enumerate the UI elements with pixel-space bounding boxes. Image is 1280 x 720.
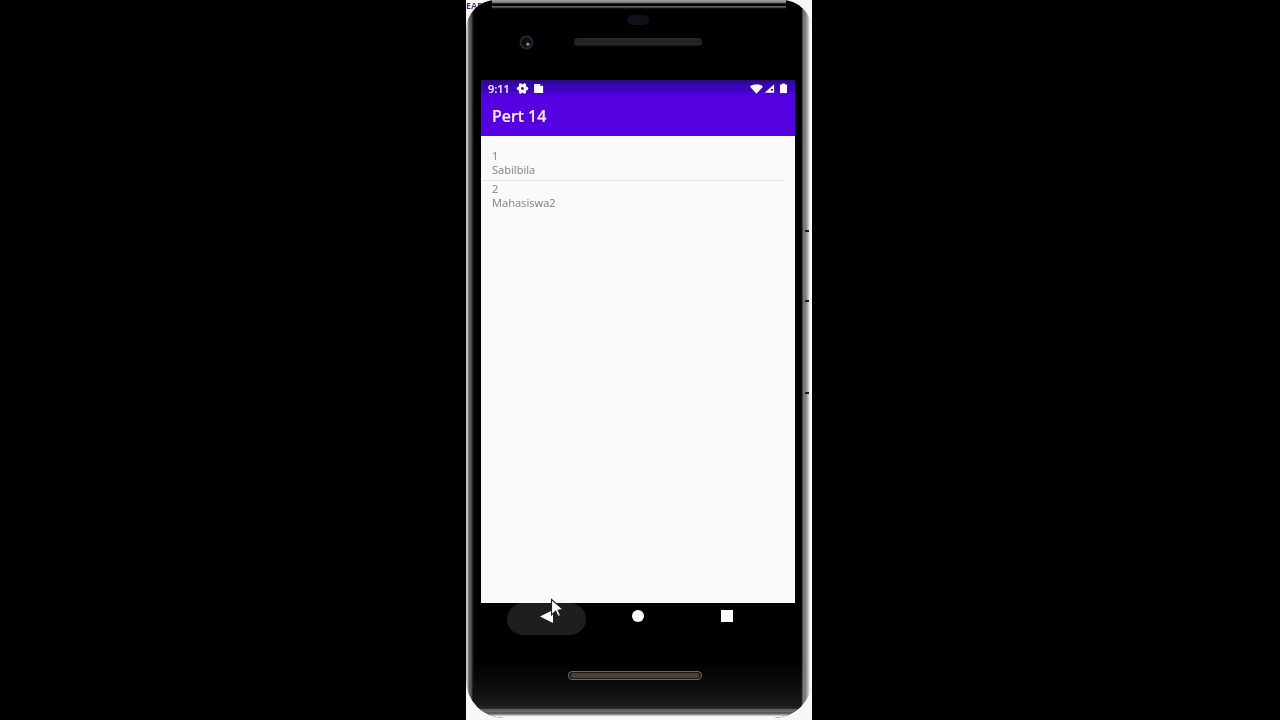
staticText: Pert 14 (492, 105, 547, 127)
staticText: Sabilbila (492, 162, 536, 176)
button[interactable]: 2 (481, 182, 795, 213)
staticText: Mahasiswa2 (492, 195, 556, 209)
button[interactable]: Back (507, 603, 586, 635)
button[interactable]: 1 (481, 149, 795, 182)
button[interactable]: Home (632, 610, 644, 622)
staticText: EARD (466, 0, 490, 11)
staticText: 9:11 (488, 81, 510, 96)
staticText: 2 (492, 181, 499, 195)
staticText: 1 (492, 148, 499, 162)
button[interactable]: Back (540, 610, 553, 623)
